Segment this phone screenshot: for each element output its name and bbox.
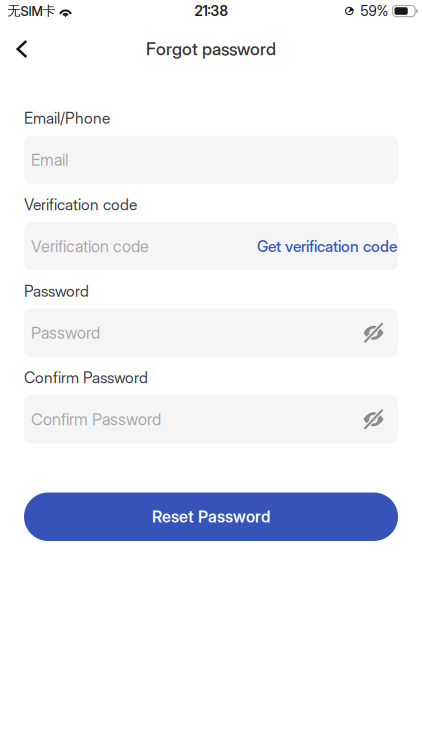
staticText: 59% [361,2,389,19]
staticText: Confirm Password [31,409,161,429]
button[interactable]: Get verification code [257,222,398,270]
staticText: Verification code [24,195,137,214]
button[interactable]: Show password [352,395,398,443]
staticText: 无SIM卡 [7,3,55,19]
staticText: Email/Phone [24,109,110,127]
staticText: Password [31,323,100,343]
staticText: Password [24,282,89,300]
staticText: Verification code [31,236,149,256]
button[interactable]: Reset Password [24,492,398,541]
button[interactable]: Show password [352,308,398,357]
staticText: 21:38 [194,2,227,19]
staticText: Forgot password [146,38,276,59]
staticText: Reset Password [152,507,270,526]
staticText: Get verification code [257,237,397,256]
button[interactable]: Back [0,31,44,67]
staticText: Email [31,150,68,170]
staticText: Confirm Password [24,368,148,387]
